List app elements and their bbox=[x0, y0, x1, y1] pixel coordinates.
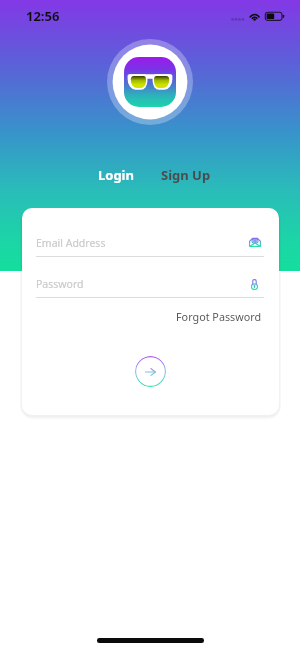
button[interactable]: Sign Up bbox=[153, 161, 219, 189]
button[interactable]: Email bbox=[249, 237, 261, 247]
staticText: Sign Up bbox=[161, 166, 211, 184]
button[interactable]: Submit bbox=[135, 356, 166, 387]
staticText: Login bbox=[98, 166, 134, 184]
button[interactable]: Login bbox=[90, 161, 142, 189]
staticText: Forgot Password bbox=[176, 309, 262, 324]
staticText: Password bbox=[36, 277, 84, 291]
staticText: Email Address bbox=[36, 236, 106, 250]
button[interactable]: Forgot Password bbox=[168, 301, 270, 332]
staticText: 12:56 bbox=[26, 7, 60, 25]
button[interactable]: Show password bbox=[251, 279, 258, 290]
